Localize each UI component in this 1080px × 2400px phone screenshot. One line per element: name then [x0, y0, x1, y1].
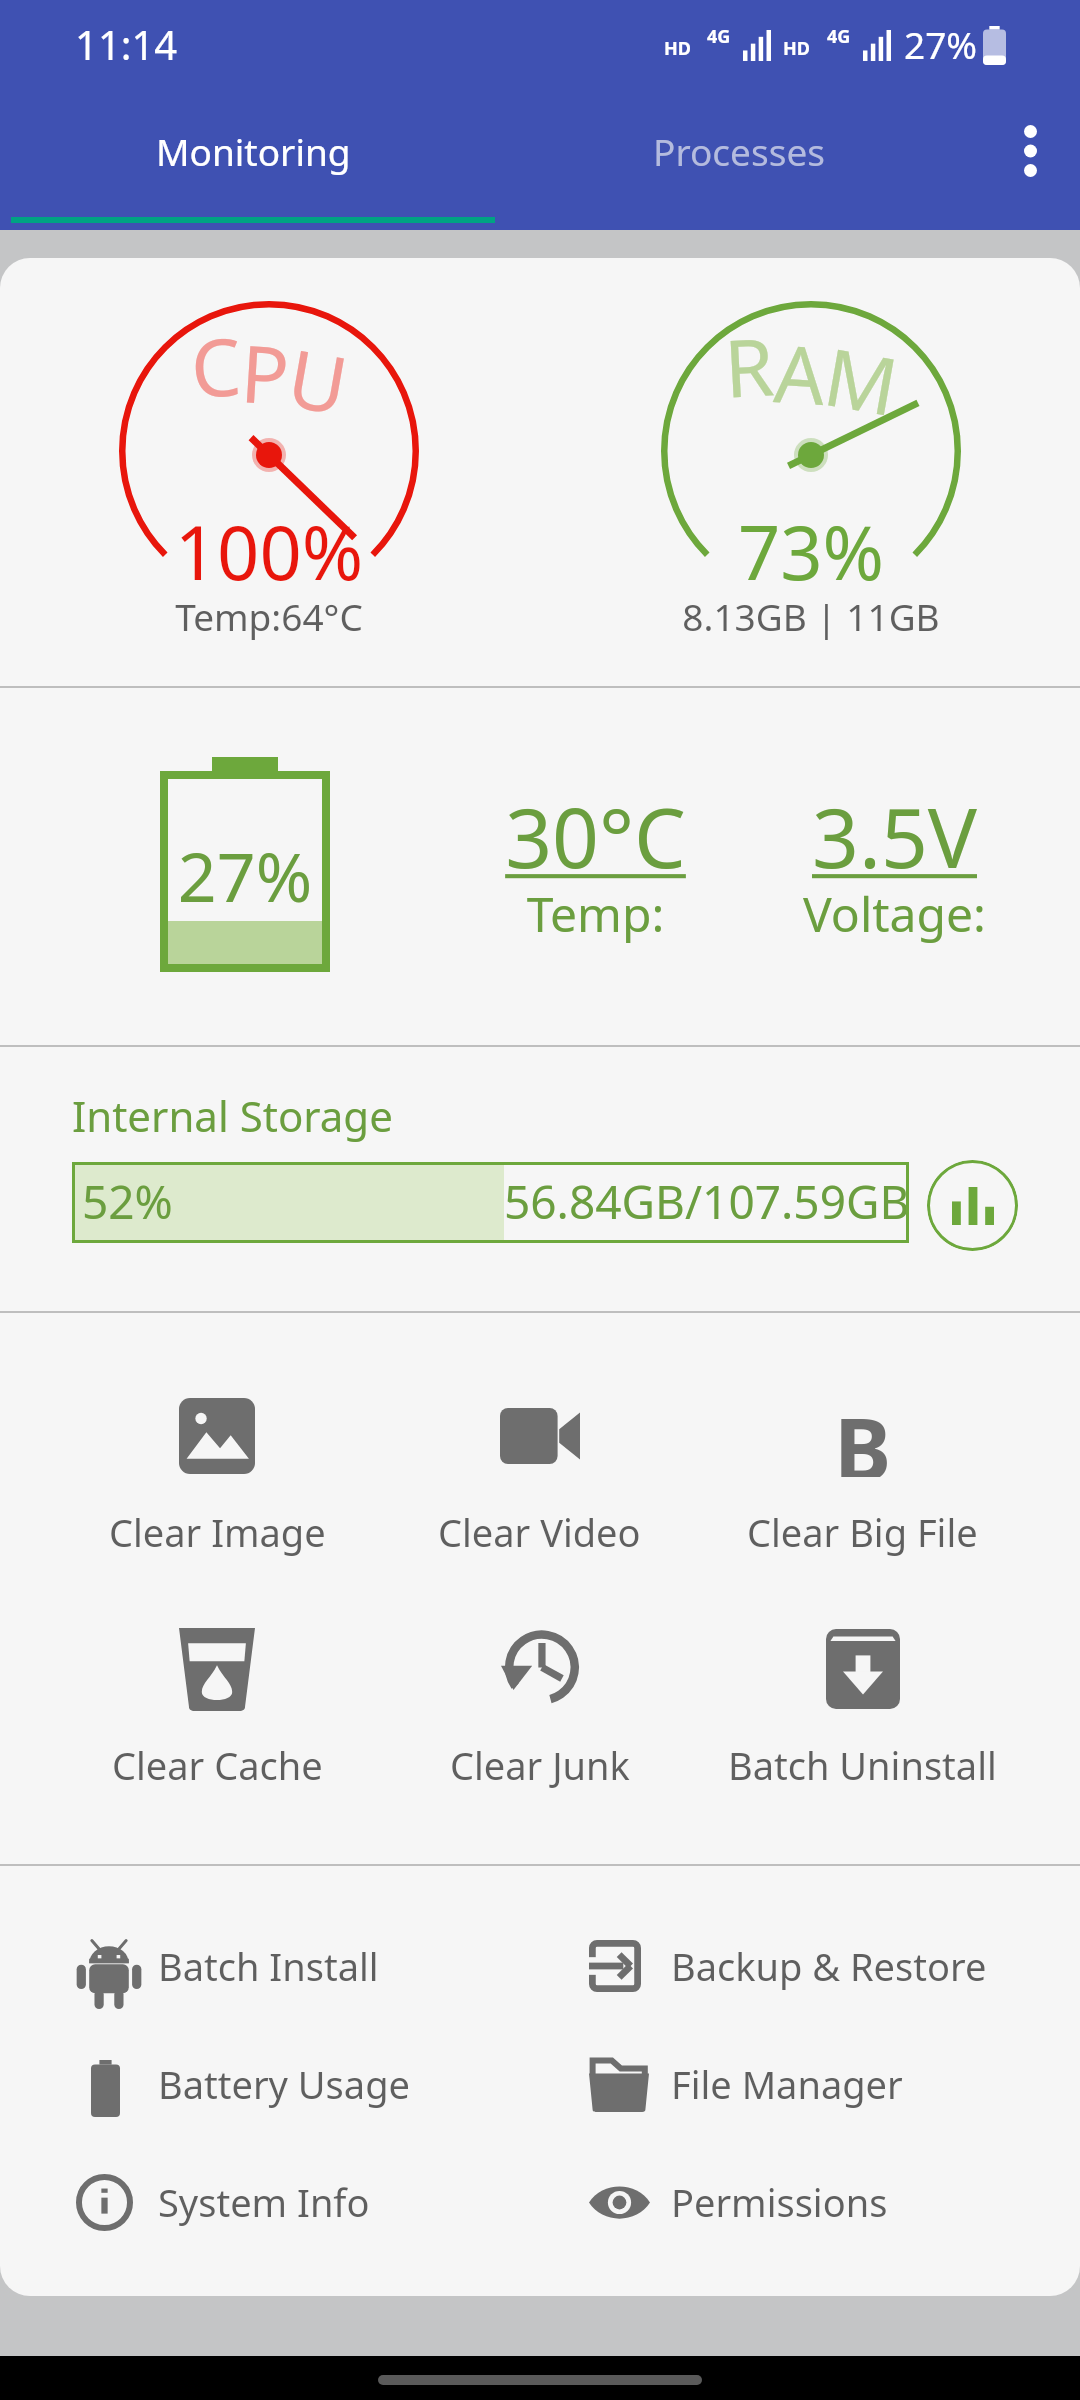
- button[interactable]: File Manager: [589, 2044, 1080, 2124]
- staticText: 27%: [160, 829, 330, 922]
- staticText: Battery Usage: [158, 2058, 410, 2110]
- button[interactable]: Storage details: [927, 1160, 1018, 1251]
- staticText: 30°C: [468, 780, 723, 892]
- button[interactable]: Backup & Restore: [589, 1926, 1080, 2006]
- staticText: 4G: [827, 24, 851, 49]
- staticText: Clear Junk: [450, 1739, 630, 1791]
- staticText: 73%: [661, 501, 961, 602]
- staticText: 52%: [82, 1170, 173, 1233]
- staticText: Batch Install: [158, 1940, 379, 1992]
- staticText: Processes: [653, 126, 825, 176]
- button[interactable]: Processes: [496, 90, 981, 230]
- staticText: Monitoring: [156, 126, 351, 176]
- button[interactable]: Clear Image: [56, 1392, 378, 1558]
- button[interactable]: System Info: [76, 2162, 540, 2242]
- button[interactable]: Clear Junk: [378, 1625, 701, 1791]
- button[interactable]: Batch Uninstall: [701, 1625, 1024, 1791]
- staticText: Backup & Restore: [671, 1940, 987, 1992]
- staticText: Clear Cache: [112, 1739, 323, 1791]
- staticText: 100%: [119, 501, 419, 602]
- staticText: Internal Storage: [72, 1087, 393, 1144]
- staticText: HD: [783, 36, 810, 61]
- staticText: 8.13GB | 11GB: [661, 591, 961, 641]
- staticText: Clear Video: [438, 1506, 641, 1558]
- staticText: 11:14: [75, 17, 178, 71]
- staticText: Temp:64°C: [119, 591, 419, 641]
- staticText: Clear Big File: [747, 1506, 978, 1558]
- staticText: HD: [664, 36, 691, 61]
- staticText: 3.5V: [767, 780, 1022, 892]
- button[interactable]: Battery Usage: [76, 2044, 540, 2124]
- staticText: Temp:: [468, 881, 723, 946]
- staticText: Batch Uninstall: [728, 1739, 997, 1791]
- staticText: 27%: [904, 19, 978, 69]
- button[interactable]: Monitoring: [11, 90, 496, 230]
- staticText: Voltage:: [767, 881, 1022, 946]
- staticText: 56.84GB/107.59GB: [504, 1170, 910, 1233]
- staticText: File Manager: [671, 2058, 903, 2110]
- staticText: Permissions: [671, 2176, 888, 2228]
- staticText: B: [834, 1389, 892, 1477]
- button[interactable]: Permissions: [589, 2162, 1080, 2242]
- button[interactable]: Batch Install: [76, 1926, 540, 2006]
- button[interactable]: Clear Video: [378, 1392, 701, 1558]
- staticText: 4G: [707, 24, 731, 49]
- staticText: System Info: [158, 2176, 370, 2228]
- button[interactable]: B: [701, 1392, 1024, 1558]
- button[interactable]: More options: [981, 90, 1080, 230]
- staticText: Clear Image: [109, 1506, 326, 1558]
- button[interactable]: Clear Cache: [56, 1625, 378, 1791]
